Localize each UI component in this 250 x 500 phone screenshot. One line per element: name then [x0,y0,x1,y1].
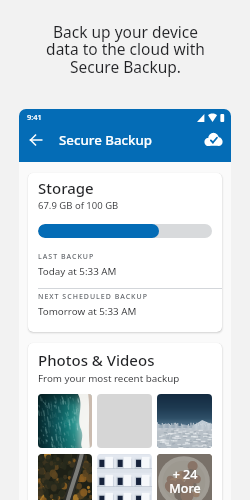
button[interactable] [157,394,212,448]
staticText: NEXT SCHEDULED BACKUP [38,292,148,302]
staticText: 9:41 [27,112,42,122]
button[interactable]: Storage [28,173,222,332]
button[interactable] [97,454,152,500]
button[interactable]: Backup complete [202,127,224,149]
staticText: Back up your device data to the cloud wi… [46,21,205,78]
button[interactable]: Back [25,129,47,151]
staticText: Today at 5:33 AM [38,265,117,278]
staticText: Storage [38,178,94,198]
button[interactable]: + 24 More [157,454,212,500]
staticText: 67.9 GB of 100 GB [38,199,119,212]
staticText: + 24 More [169,466,201,497]
staticText: Secure Backup [59,131,153,149]
staticText: LAST BACKUP [38,252,95,262]
staticText: Tomorrow at 5:33 AM [38,305,137,318]
staticText: Photos & Videos [38,350,155,370]
button[interactable] [38,454,92,500]
staticText: From your most recent backup [38,372,180,385]
button[interactable] [38,394,92,448]
